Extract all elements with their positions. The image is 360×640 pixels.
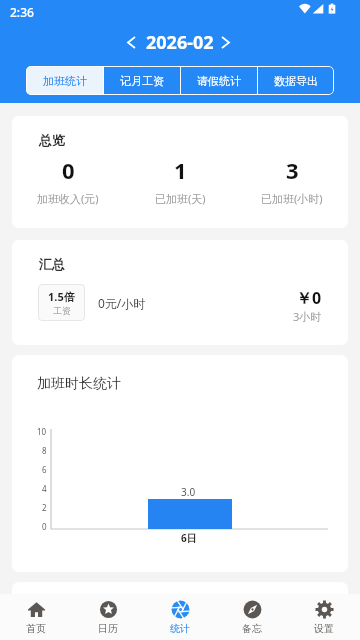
staticText: 6: [42, 464, 47, 475]
staticText: 4: [42, 483, 47, 494]
staticText: 总览: [39, 132, 65, 148]
staticText: 2026-02: [146, 30, 214, 55]
staticText: 0: [62, 155, 75, 185]
staticText: 0元/小时: [98, 295, 146, 311]
button[interactable]: 请假统计: [181, 66, 257, 95]
button[interactable]: 备忘: [216, 594, 288, 640]
staticText: 0: [42, 521, 47, 532]
button[interactable]: 加班统计: [26, 66, 103, 95]
staticText: 工资: [53, 305, 71, 316]
staticText: 3小时: [293, 309, 322, 324]
staticText: 数据导出: [274, 74, 318, 88]
staticText: 汇总: [39, 256, 65, 272]
staticText: 3: [286, 155, 299, 185]
staticText: 首页: [26, 622, 46, 635]
staticText: 8: [42, 445, 47, 456]
button[interactable]: Previous month: [124, 27, 146, 57]
button[interactable]: 统计: [144, 594, 216, 640]
staticText: 已加班(天): [155, 191, 206, 206]
staticText: 加班时长统计: [37, 375, 121, 393]
staticText: 已加班(小时): [261, 191, 323, 206]
staticText: 设置: [314, 622, 334, 635]
button[interactable]: 首页: [0, 594, 72, 640]
staticText: 统计: [170, 622, 190, 635]
staticText: 1: [174, 155, 187, 185]
staticText: 请假统计: [197, 74, 241, 88]
button[interactable]: Next month: [214, 27, 236, 57]
staticText: 2: [42, 502, 47, 513]
staticText: 2:36: [10, 4, 34, 20]
button[interactable]: 日历: [72, 594, 144, 640]
staticText: ￥0: [296, 287, 322, 309]
button[interactable]: 记月工资: [104, 66, 180, 95]
staticText: 10: [37, 426, 47, 437]
staticText: 日历: [98, 622, 118, 635]
button[interactable]: 设置: [288, 594, 360, 640]
staticText: 备忘: [242, 622, 262, 635]
staticText: 加班收入(元): [37, 191, 99, 206]
staticText: 3.0: [181, 485, 196, 499]
staticText: 6日: [181, 531, 197, 545]
button[interactable]: 数据导出: [258, 66, 334, 95]
staticText: 加班统计: [43, 74, 87, 88]
staticText: 记月工资: [120, 74, 164, 88]
staticText: 1.5倍: [48, 289, 75, 304]
